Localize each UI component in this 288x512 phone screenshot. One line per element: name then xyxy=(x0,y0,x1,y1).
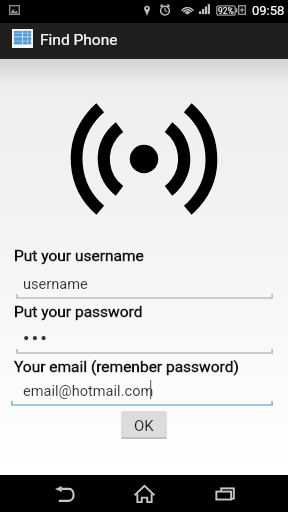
staticText: 92% xyxy=(218,6,234,16)
staticText: email@hotmail.com xyxy=(23,382,154,399)
button[interactable]: Email field xyxy=(11,401,273,407)
button[interactable]: Text field xyxy=(16,294,273,300)
staticText: Put your password xyxy=(14,303,143,321)
button[interactable]: Recent apps xyxy=(202,478,247,509)
staticText: Your email (remenber password) xyxy=(14,358,239,376)
staticText: Put your username xyxy=(14,247,144,265)
staticText: OK xyxy=(134,417,154,435)
staticText: 09:58 xyxy=(252,3,285,18)
button[interactable]: Back xyxy=(42,478,87,509)
staticText: username xyxy=(23,275,88,292)
button[interactable]: OK xyxy=(121,411,167,439)
button[interactable]: Text field xyxy=(16,349,273,355)
staticText: Find Phone xyxy=(40,31,118,49)
button[interactable]: Home xyxy=(122,478,167,509)
button[interactable]: App icon xyxy=(12,29,33,48)
